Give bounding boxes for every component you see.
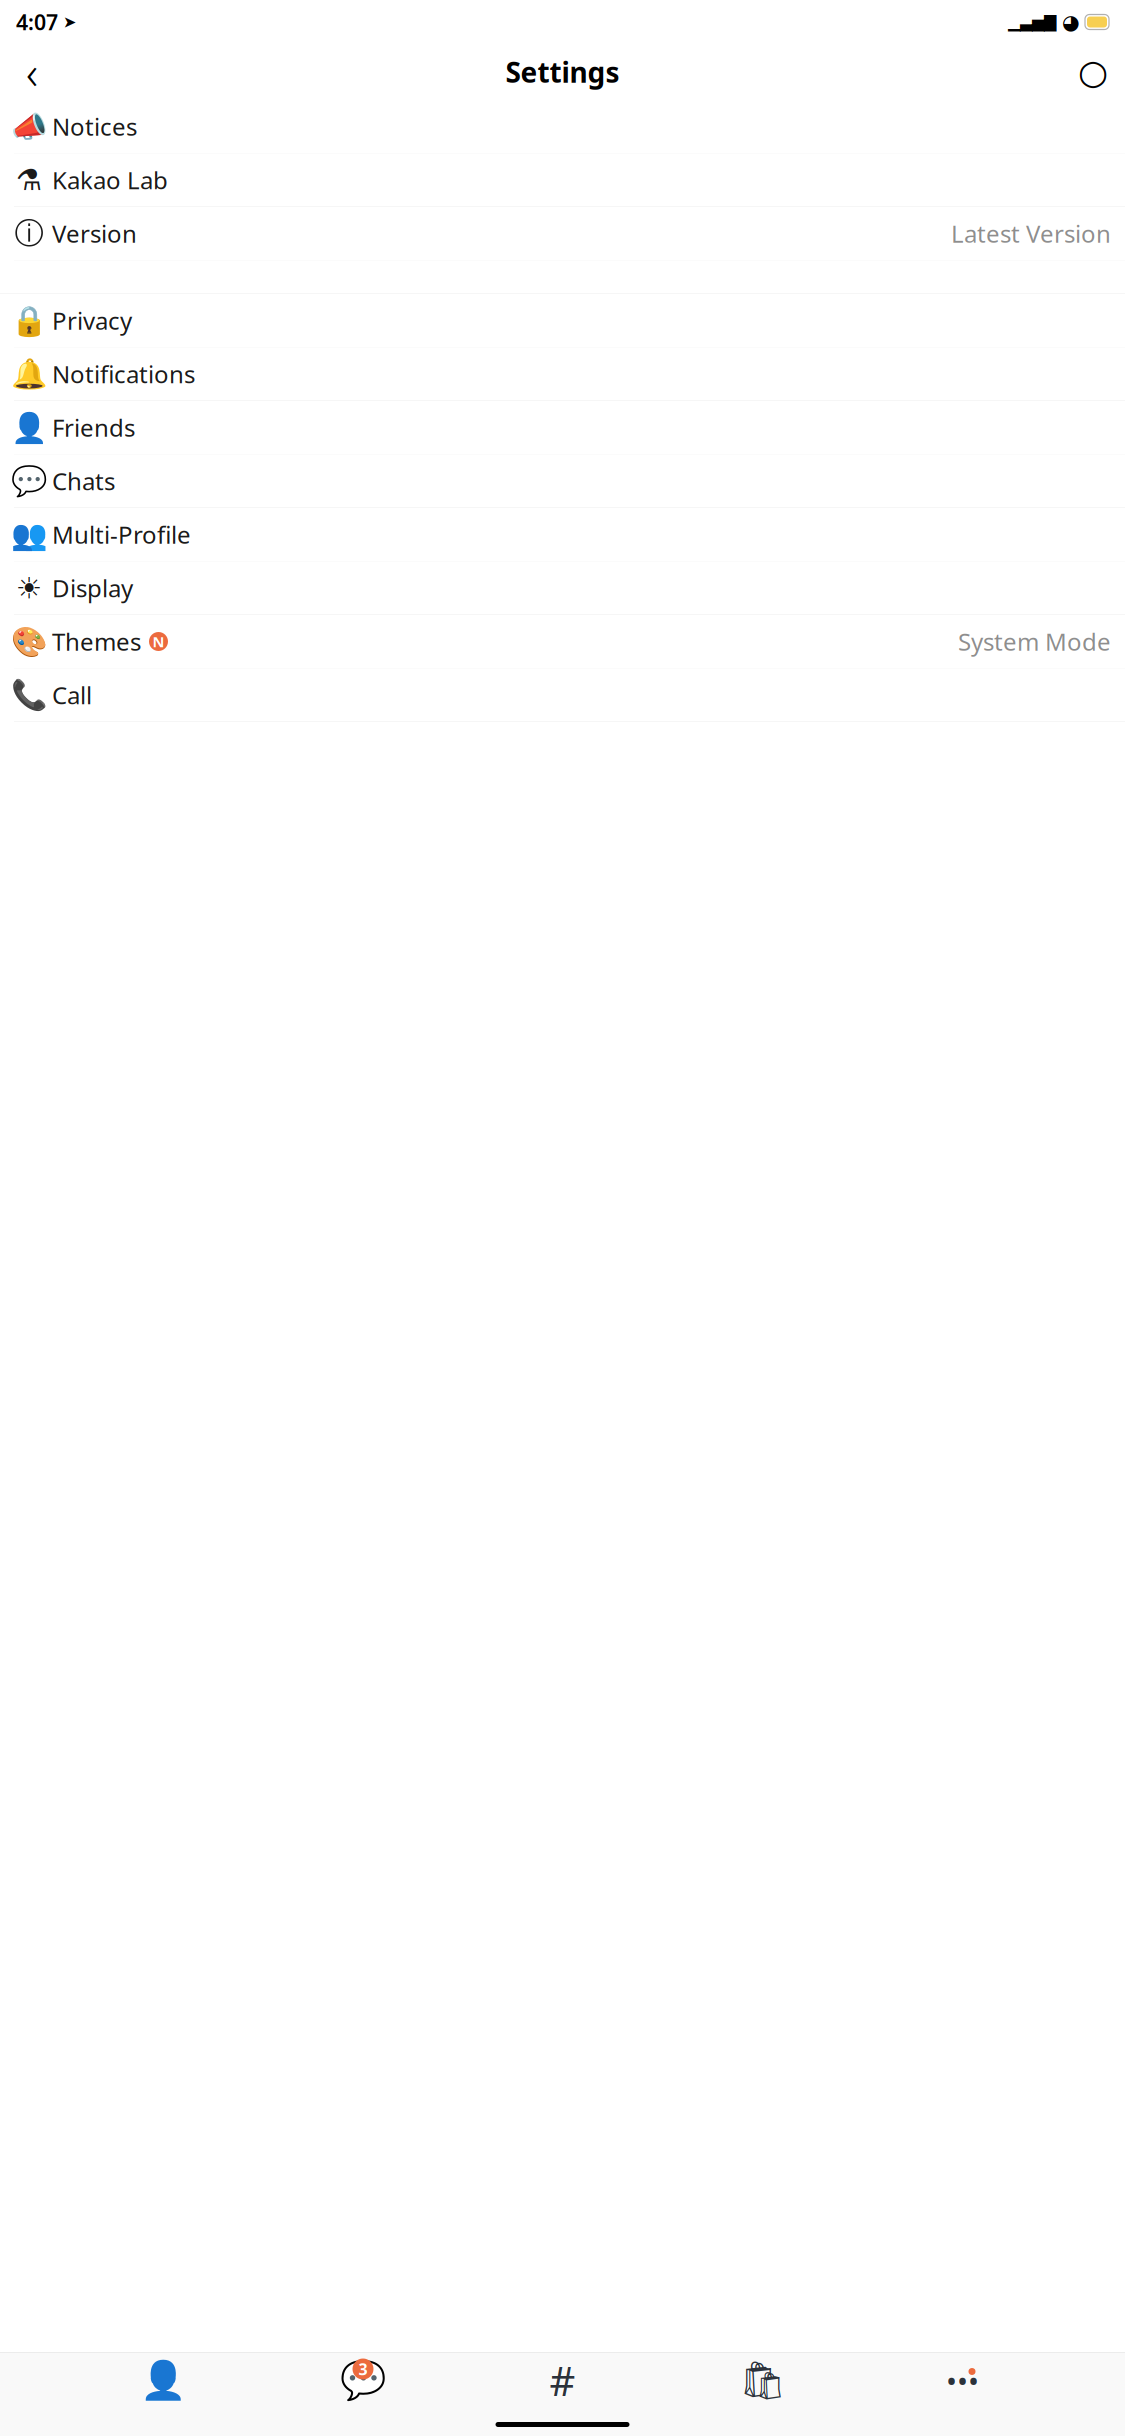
button[interactable]: 📣 — [0, 100, 1125, 153]
staticText: ⓘ — [14, 215, 43, 251]
staticText: 🔒 — [10, 304, 47, 337]
button[interactable]: ••• — [925, 2354, 1000, 2406]
staticText: 👤 — [139, 2359, 185, 2402]
staticText: Friends — [52, 412, 135, 443]
staticText: 📞 — [10, 678, 47, 712]
button[interactable]: ⓘ — [0, 207, 1125, 260]
staticText: 💬 — [339, 2359, 385, 2402]
staticText: 🛍 — [739, 2359, 786, 2402]
staticText: ☀ — [16, 571, 42, 605]
staticText: Chats — [52, 465, 115, 497]
button[interactable]: 📞 — [0, 668, 1125, 722]
staticText: ➤ — [63, 13, 76, 31]
button[interactable]: 👤 — [0, 401, 1125, 454]
staticText: Display — [52, 572, 133, 604]
staticText: # — [549, 2354, 575, 2407]
staticText: ••• — [946, 2361, 979, 2400]
staticText: Version — [52, 218, 137, 249]
staticText: Themes — [52, 626, 141, 657]
button[interactable]: 🛍 — [725, 2354, 800, 2406]
staticText: Settings — [505, 53, 619, 91]
staticText: ◕ — [1062, 11, 1079, 33]
button[interactable]: # — [525, 2354, 600, 2406]
button[interactable]: ○ — [1071, 50, 1115, 94]
button[interactable]: ☀ — [0, 561, 1125, 615]
staticText: Privacy — [52, 305, 132, 336]
staticText: 🎨 — [10, 625, 47, 658]
staticText: N — [152, 632, 164, 651]
button[interactable]: 👤 — [125, 2354, 200, 2406]
staticText: Latest Version — [951, 218, 1111, 249]
staticText: ‹ — [26, 42, 38, 102]
staticText: 💬 — [10, 464, 47, 498]
staticText: 📣 — [10, 110, 47, 143]
button[interactable]: ‹ — [10, 50, 54, 94]
button[interactable]: 🔔 — [0, 347, 1125, 401]
staticText: Kakao Lab — [52, 164, 168, 196]
staticText: 👤 — [10, 411, 47, 444]
staticText: 4:07 — [16, 8, 58, 36]
button[interactable]: 🔒 — [0, 294, 1125, 347]
staticText: Multi-Profile — [52, 519, 191, 550]
button[interactable]: 💬 — [0, 454, 1125, 508]
staticText: 🔔 — [10, 357, 47, 391]
button[interactable]: 👥 — [0, 508, 1125, 561]
staticText: ○ — [1078, 52, 1108, 92]
staticText: System Mode — [958, 626, 1111, 657]
staticText: 3 — [358, 2358, 367, 2380]
staticText: 👥 — [10, 518, 47, 551]
staticText: Call — [52, 679, 92, 711]
staticText: ⚗ — [16, 163, 42, 197]
staticText: Notifications — [52, 358, 195, 390]
staticText: Notices — [52, 111, 137, 142]
button[interactable]: 🎨 — [0, 615, 1125, 668]
button[interactable]: 💬 — [325, 2354, 400, 2406]
button[interactable]: ⚗ — [0, 153, 1125, 207]
staticText: ▁▃▅▇ — [1008, 13, 1056, 31]
